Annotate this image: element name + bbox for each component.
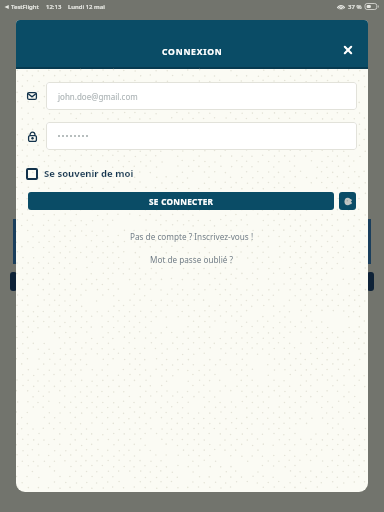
- staticText: 37 %: [348, 3, 362, 11]
- staticText: CONNEXION: [162, 46, 223, 58]
- button[interactable]: Se souvenir de moi: [26, 167, 134, 180]
- staticText: john.doe@gmail.com: [58, 91, 138, 102]
- staticText: TestFlight: [11, 3, 39, 11]
- button[interactable]: Pas de compte ? Inscrivez-vous !: [126, 229, 258, 244]
- staticText: Se souvenir de moi: [44, 167, 134, 180]
- button[interactable]: Fermer: [336, 38, 360, 62]
- staticText: 12:13: [46, 3, 62, 11]
- staticText: Lundi 12 mai: [68, 3, 105, 11]
- button[interactable]: Empreinte digitale: [339, 192, 356, 210]
- button[interactable]: Mot de passe oublié ?: [146, 252, 238, 267]
- staticText: Pas de compte ? Inscrivez-vous !: [130, 231, 254, 242]
- button[interactable]: SE CONNECTER: [28, 192, 334, 210]
- staticText: SE CONNECTER: [149, 196, 214, 207]
- staticText: Mot de passe oublié ?: [150, 254, 234, 265]
- button[interactable]: [46, 122, 357, 150]
- button[interactable]: john.doe@gmail.com: [46, 82, 357, 110]
